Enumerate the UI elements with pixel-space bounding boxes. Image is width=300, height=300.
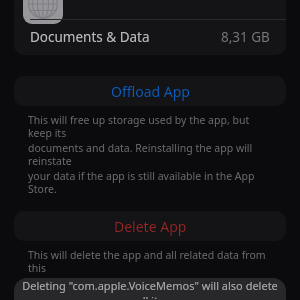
staticText: 8,31 GB [221, 28, 270, 46]
staticText: Deleting "com.apple.VoiceMemos" will als… [22, 278, 278, 299]
button[interactable]: Offload App [14, 76, 286, 106]
staticText: documents and data. Reinstalling the app… [28, 141, 272, 168]
staticText: iPhone. This action can't be undone. [28, 276, 206, 290]
button[interactable]: Documents & Data [14, 19, 286, 55]
staticText: Delete App [114, 217, 187, 236]
staticText: This will free up storage used by the ap… [28, 113, 272, 140]
staticText: Offload App [111, 82, 190, 101]
button[interactable]: Delete App [14, 211, 286, 241]
staticText: This will delete the app and all related… [28, 248, 272, 275]
staticText: your data if the app is still available … [28, 169, 272, 196]
staticText: Documents & Data [30, 28, 150, 46]
